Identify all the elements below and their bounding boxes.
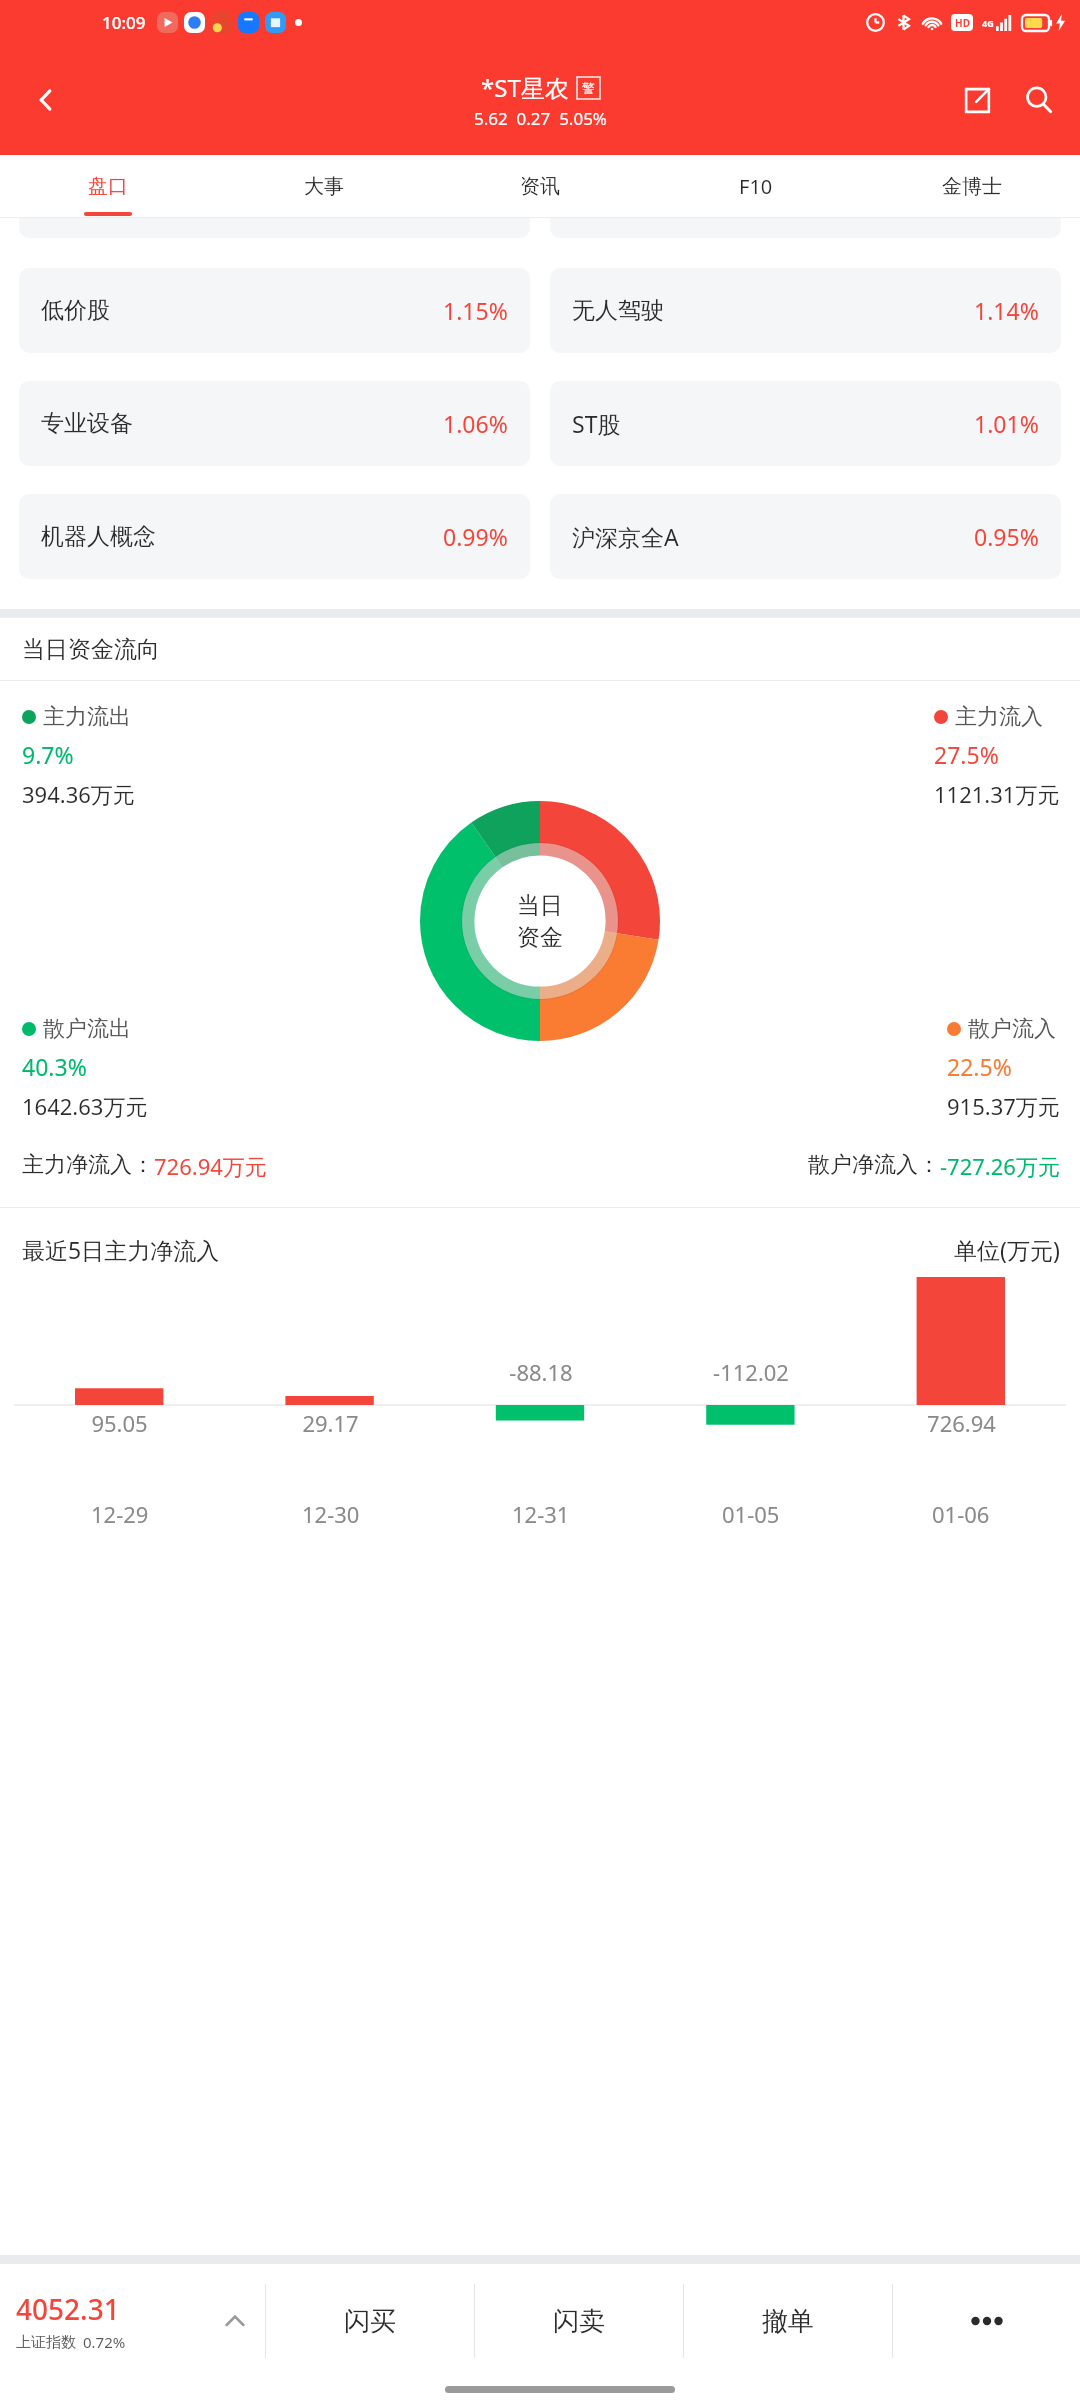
staticText: 1.06% — [443, 408, 508, 439]
button[interactable]: 闪买 — [266, 2264, 474, 2378]
staticText: 1.15% — [443, 295, 508, 326]
button[interactable]: F10 — [648, 155, 864, 218]
staticText: 10:09 — [102, 11, 146, 34]
button[interactable]: 撤单 — [684, 2264, 892, 2378]
button[interactable]: 无人驾驶 — [550, 268, 1061, 353]
staticText: 资讯 — [520, 174, 560, 199]
button[interactable]: 金博士 — [864, 155, 1080, 218]
staticText: 01-06 — [932, 1499, 990, 1529]
staticText: 无人驾驶 — [572, 296, 664, 325]
staticText: 1642.63万元 — [22, 1091, 148, 1121]
staticText: 机器人概念 — [41, 522, 156, 551]
button[interactable]: 沪深京全A — [550, 494, 1061, 579]
staticText: 当日 — [517, 891, 563, 920]
staticText: 915.37万元 — [947, 1091, 1060, 1121]
staticText: 394.36万元 — [22, 779, 135, 809]
staticText: 1.01% — [974, 408, 1039, 439]
staticText: 95.05 — [91, 1408, 148, 1438]
staticText: 726.94 — [927, 1408, 996, 1438]
button[interactable]: ST股 — [550, 381, 1061, 466]
staticText: 27.5% — [934, 739, 999, 770]
staticText: 上证指数 — [16, 2333, 76, 2352]
staticText: 01-05 — [722, 1499, 780, 1529]
staticText: -112.02 — [713, 1357, 789, 1387]
staticText: 盘口 — [88, 174, 128, 199]
staticText: 22.5% — [947, 1051, 1012, 1082]
button[interactable]: 闪卖 — [475, 2264, 683, 2378]
staticText: 金博士 — [942, 174, 1002, 199]
staticText: 低价股 — [41, 296, 110, 325]
staticText: 主力流出 — [43, 703, 131, 731]
staticText: 闪买 — [344, 2305, 396, 2338]
staticText: 专业设备 — [41, 409, 133, 438]
staticText: -88.18 — [509, 1357, 573, 1387]
staticText: F10 — [739, 173, 773, 200]
staticText: 撤单 — [762, 2305, 814, 2338]
button[interactable]: 4052.31 — [0, 2264, 205, 2378]
staticText: 主力流入 — [955, 703, 1043, 731]
staticText: *ST星农 — [481, 71, 569, 104]
staticText: 1121.31万元 — [934, 779, 1060, 809]
staticText: 12-30 — [302, 1499, 360, 1529]
button[interactable]: Share — [946, 69, 1008, 131]
button[interactable]: 专业设备 — [19, 381, 530, 466]
button[interactable]: Search — [1008, 69, 1070, 131]
staticText: 29.17 — [302, 1408, 359, 1438]
staticText: 9.7% — [22, 739, 74, 770]
button[interactable]: 资讯 — [432, 155, 648, 218]
staticText: -727.26万元 — [940, 1151, 1060, 1181]
staticText: 4052.31 — [16, 2290, 120, 2328]
staticText: 闪卖 — [553, 2305, 605, 2338]
button[interactable]: 大事 — [216, 155, 432, 218]
button[interactable]: 盘口 — [0, 155, 216, 218]
staticText: 最近5日主力净流入 — [22, 1234, 220, 1265]
staticText: 大事 — [304, 174, 344, 199]
staticText: 散户流入 — [968, 1015, 1056, 1043]
staticText: HD — [955, 16, 970, 30]
staticText: 警 — [582, 80, 595, 96]
staticText: 当日资金流向 — [22, 635, 160, 664]
staticText: 散户流出 — [43, 1015, 131, 1043]
button[interactable]: More — [893, 2264, 1080, 2378]
staticText: 726.94万元 — [154, 1151, 267, 1181]
staticText: ST股 — [572, 408, 621, 439]
staticText: 主力净流入： — [22, 1151, 154, 1179]
staticText: 4G — [982, 17, 994, 29]
staticText: 40.3% — [22, 1051, 87, 1082]
staticText: 散户净流入： — [808, 1151, 940, 1179]
staticText: 12-29 — [91, 1499, 149, 1529]
button[interactable]: 低价股 — [19, 268, 530, 353]
staticText: 沪深京全A — [572, 521, 679, 552]
staticText: 5.62 0.27 5.05% — [474, 107, 607, 130]
staticText: 0.99% — [443, 521, 508, 552]
staticText: 1.14% — [974, 295, 1039, 326]
button[interactable]: Expand index — [205, 2264, 265, 2378]
staticText: 0.72% — [83, 2332, 126, 2352]
staticText: 12-31 — [512, 1499, 570, 1529]
button[interactable]: 机器人概念 — [19, 494, 530, 579]
staticText: 单位(万元) — [954, 1234, 1060, 1265]
staticText: 0.95% — [974, 521, 1039, 552]
staticText: 资金 — [517, 923, 563, 952]
button[interactable]: Back — [14, 68, 78, 132]
